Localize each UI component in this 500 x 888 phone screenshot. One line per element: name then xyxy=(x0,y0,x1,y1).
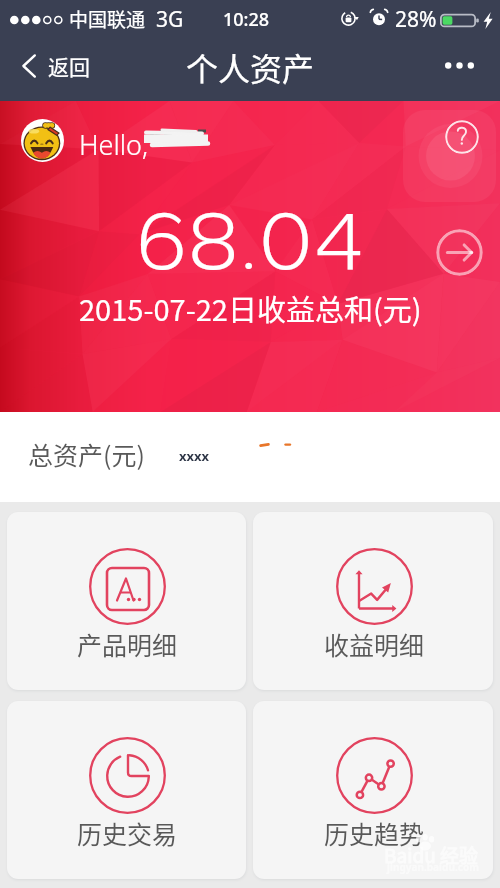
staticText: 历史趋势 xyxy=(324,815,425,851)
staticText: 产品明细 xyxy=(77,626,178,662)
staticText: 总资产(元) xyxy=(28,436,145,472)
staticText: 10:28 xyxy=(223,7,270,32)
staticText: 68.04 xyxy=(136,189,365,290)
button[interactable]: More options xyxy=(427,49,500,92)
staticText: Hello, xyxy=(79,126,148,163)
button[interactable]: 产品明细 xyxy=(7,512,246,690)
button[interactable]: Profile xyxy=(21,119,64,162)
staticText: 收益明细 xyxy=(324,626,425,662)
button[interactable]: 返回 xyxy=(0,41,104,91)
staticText: 28% xyxy=(395,5,437,34)
staticText: 2015-07-22日收益总和(元) xyxy=(79,287,422,329)
staticText: Baidu 经验 xyxy=(384,841,478,869)
button[interactable]: 收益明细 xyxy=(253,512,493,690)
button[interactable]: Help xyxy=(445,120,479,154)
staticText: xxxx xyxy=(179,447,210,465)
staticText: 3G xyxy=(156,5,184,34)
staticText: 返回 xyxy=(48,51,90,81)
staticText: 中国联通 xyxy=(69,5,146,33)
staticText: 历史交易 xyxy=(77,815,178,851)
button[interactable]: Next xyxy=(436,229,483,276)
button[interactable]: 历史趋势 xyxy=(253,701,493,879)
button[interactable]: 历史交易 xyxy=(7,701,246,879)
staticText: 个人资产 xyxy=(186,44,315,90)
